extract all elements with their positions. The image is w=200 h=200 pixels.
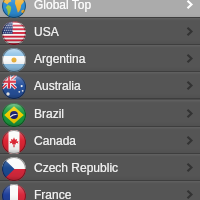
button[interactable]: Australia xyxy=(0,72,200,99)
staticText: France xyxy=(34,188,72,200)
button[interactable]: USA xyxy=(0,18,200,45)
button[interactable]: France xyxy=(0,181,200,200)
button[interactable]: Canada xyxy=(0,127,200,154)
button[interactable]: Argentina xyxy=(0,45,200,72)
button[interactable]: Global Top xyxy=(0,0,200,18)
button[interactable]: Czech Republic xyxy=(0,154,200,181)
staticText: Argentina xyxy=(34,52,86,65)
staticText: Brazil xyxy=(34,107,65,120)
staticText: Global Top xyxy=(34,0,92,11)
staticText: Czech Republic xyxy=(34,161,119,174)
button[interactable]: Brazil xyxy=(0,100,200,127)
staticText: Canada xyxy=(34,134,77,147)
staticText: Australia xyxy=(34,79,81,92)
staticText: USA xyxy=(34,25,59,38)
